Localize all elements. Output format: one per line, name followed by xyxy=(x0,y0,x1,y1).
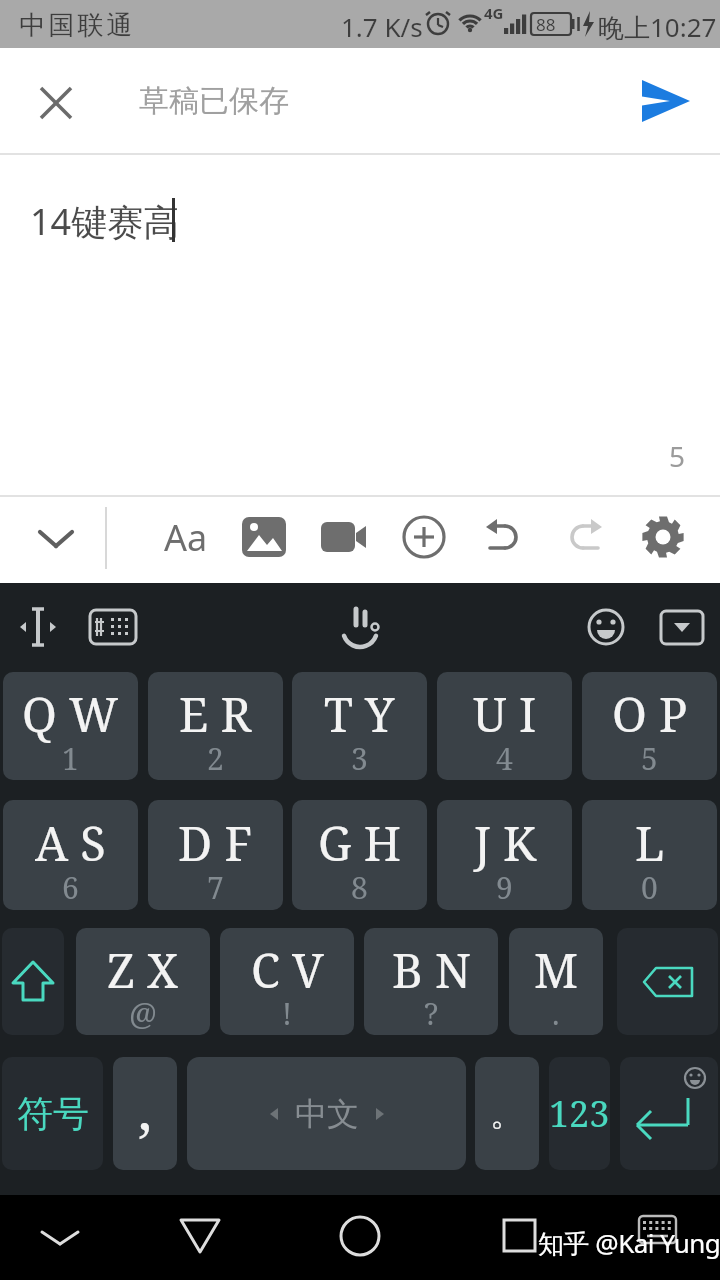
button[interactable] xyxy=(630,65,702,137)
button[interactable] xyxy=(478,511,530,563)
button[interactable] xyxy=(2,928,64,1035)
button[interactable]: A S xyxy=(3,800,138,910)
staticText: 1 xyxy=(62,738,79,779)
button[interactable]: C V xyxy=(220,928,354,1035)
staticText: @ xyxy=(129,993,157,1034)
staticText: 。 xyxy=(490,1092,524,1135)
staticText: U I xyxy=(473,682,537,746)
button[interactable] xyxy=(637,511,689,563)
button[interactable] xyxy=(656,601,708,653)
staticText: J K xyxy=(474,811,536,875)
button[interactable]: 。 xyxy=(475,1057,539,1170)
button[interactable]: Z X xyxy=(76,928,210,1035)
staticText: 123 xyxy=(549,1089,610,1138)
staticText: 草稿已保存 xyxy=(139,82,289,120)
staticText: T Y xyxy=(324,682,395,746)
staticText: 6 xyxy=(62,867,79,908)
staticText: 3 xyxy=(351,738,368,779)
staticText: Q W xyxy=(22,682,119,746)
staticText: 符号 xyxy=(17,1091,89,1136)
staticText: 88 xyxy=(536,13,556,36)
button[interactable]: M xyxy=(509,928,603,1035)
button[interactable] xyxy=(174,1211,226,1263)
button[interactable]: T Y xyxy=(292,672,427,780)
button[interactable]: Aa xyxy=(160,511,212,563)
button[interactable] xyxy=(30,77,82,129)
button[interactable] xyxy=(87,601,139,653)
button[interactable] xyxy=(12,601,64,653)
staticText: 0 xyxy=(641,867,658,908)
button[interactable] xyxy=(318,511,370,563)
staticText: , xyxy=(138,1070,152,1146)
staticText: 知乎 @Kai Yung xyxy=(538,1225,720,1261)
button[interactable]: O P xyxy=(582,672,717,780)
staticText: 2 xyxy=(207,738,224,779)
staticText: O P xyxy=(612,682,688,746)
button[interactable] xyxy=(617,928,718,1035)
button[interactable]: , xyxy=(113,1057,177,1170)
button[interactable]: J K xyxy=(437,800,572,910)
staticText: 中国联通 xyxy=(18,9,134,42)
staticText: 9 xyxy=(496,867,513,908)
button[interactable]: U I xyxy=(437,672,572,780)
button[interactable] xyxy=(34,1211,86,1263)
button[interactable]: B N xyxy=(364,928,498,1035)
button[interactable] xyxy=(238,511,290,563)
button[interactable]: 123 xyxy=(549,1057,610,1170)
staticText: ? xyxy=(424,993,439,1034)
staticText: . xyxy=(552,993,560,1034)
staticText: E R xyxy=(179,682,252,746)
staticText: Z X xyxy=(107,938,179,1002)
staticText: B N xyxy=(392,938,471,1002)
staticText: L xyxy=(635,811,665,875)
button[interactable]: 符号 xyxy=(2,1057,103,1170)
button[interactable]: Q W xyxy=(3,672,138,780)
staticText: 4G xyxy=(484,3,504,23)
button[interactable]: 中文 xyxy=(187,1057,466,1170)
button[interactable] xyxy=(620,1057,718,1170)
staticText: A S xyxy=(35,811,106,875)
staticText: Aa xyxy=(164,513,208,562)
button[interactable] xyxy=(558,511,610,563)
button[interactable]: L xyxy=(582,800,717,910)
staticText: 4 xyxy=(496,738,513,779)
staticText: G H xyxy=(318,811,402,875)
button[interactable] xyxy=(638,1215,678,1245)
button[interactable] xyxy=(494,1211,546,1263)
staticText: 5 xyxy=(641,738,658,779)
button[interactable] xyxy=(30,513,82,565)
staticText: 中文 xyxy=(295,1094,359,1134)
staticText: 5 xyxy=(669,437,686,475)
button[interactable] xyxy=(334,1211,386,1263)
button[interactable]: E R xyxy=(148,672,283,780)
button[interactable] xyxy=(580,601,632,653)
staticText: 14键赛高 xyxy=(30,197,180,246)
staticText: 1.7 K/s xyxy=(341,9,423,44)
button[interactable] xyxy=(334,601,386,653)
staticText: 7 xyxy=(207,867,224,908)
button[interactable]: G H xyxy=(292,800,427,910)
staticText: 8 xyxy=(351,867,368,908)
staticText: D F xyxy=(178,811,253,875)
button[interactable] xyxy=(398,511,450,563)
staticText: ! xyxy=(282,993,292,1034)
staticText: C V xyxy=(251,938,324,1002)
staticText: M xyxy=(534,938,579,1002)
staticText: 晚上10:27 xyxy=(598,9,717,45)
button[interactable]: D F xyxy=(148,800,283,910)
